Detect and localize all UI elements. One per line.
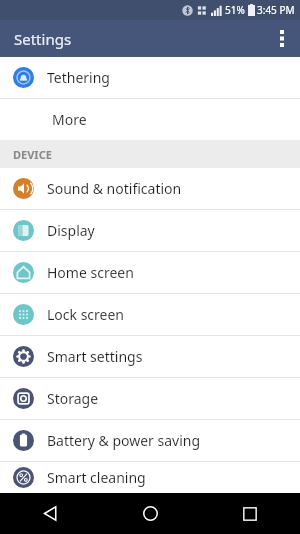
- staticText: Smart cleaning: [47, 468, 146, 487]
- staticText: Battery & power saving: [47, 431, 201, 450]
- button[interactable]: Display: [0, 210, 300, 251]
- staticText: Smart settings: [47, 347, 143, 366]
- button[interactable]: Tethering: [0, 57, 300, 98]
- button[interactable]: Battery & power saving: [0, 420, 300, 461]
- staticText: Tethering: [47, 68, 110, 87]
- button[interactable]: Sound & notification: [0, 168, 300, 209]
- button[interactable]: Storage: [0, 378, 300, 419]
- staticText: Display: [47, 221, 95, 240]
- staticText: More: [52, 110, 87, 129]
- button[interactable]: More options: [263, 20, 300, 57]
- staticText: DEVICE: [13, 147, 52, 162]
- button[interactable]: Lock screen: [0, 294, 300, 335]
- staticText: Lock screen: [47, 305, 125, 324]
- button[interactable]: Recent apps: [200, 493, 300, 534]
- button[interactable]: Home: [100, 493, 200, 534]
- staticText: 3:45 PM: [257, 3, 295, 17]
- button[interactable]: Home screen: [0, 252, 300, 293]
- staticText: Settings: [14, 29, 72, 49]
- staticText: 51%: [225, 3, 245, 17]
- staticText: Sound & notification: [47, 179, 182, 198]
- button[interactable]: Smart cleaning: [0, 462, 300, 493]
- staticText: Storage: [47, 389, 99, 408]
- button[interactable]: More: [0, 99, 300, 140]
- button[interactable]: Back: [0, 493, 100, 534]
- button[interactable]: Smart settings: [0, 336, 300, 377]
- staticText: Home screen: [47, 263, 134, 282]
